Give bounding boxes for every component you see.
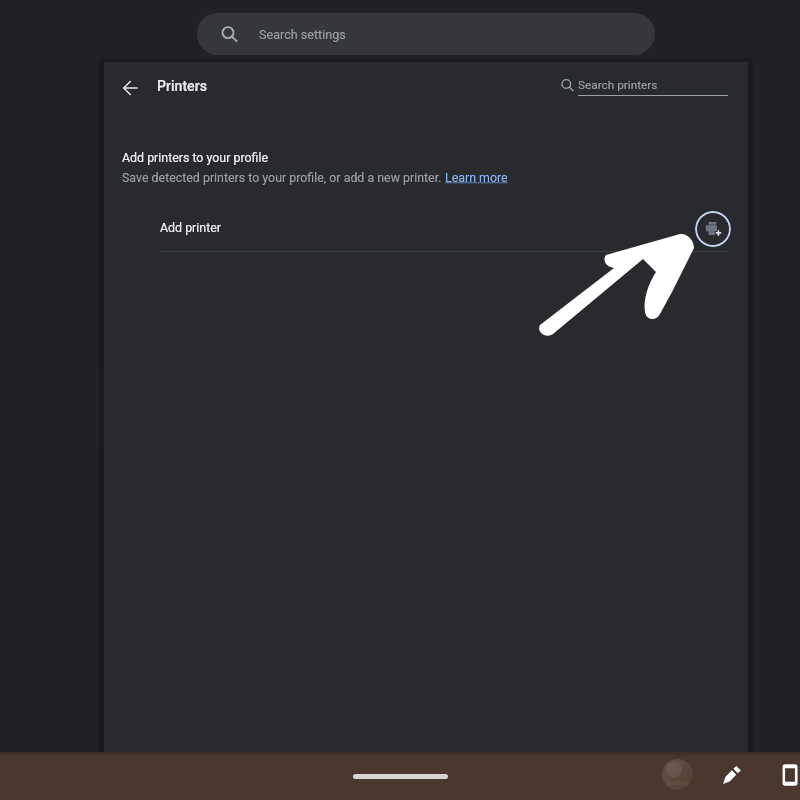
button[interactable]: Phone hub [774,759,800,791]
button[interactable]: Search printers [556,71,736,99]
staticText: Search printers [578,78,658,92]
staticText: Add printers to your profile [122,150,269,165]
button[interactable]: Search settings [197,13,655,55]
button[interactable]: Back [112,70,148,106]
staticText: Search settings [259,27,346,42]
button[interactable]: Add printer [695,211,731,247]
staticText: Save detected printers to your profile, … [122,170,445,185]
button[interactable]: Profile [662,759,693,790]
staticText: Add printer [160,220,221,235]
button[interactable]: Add printer [160,210,732,246]
button[interactable]: Learn more [445,170,508,185]
button[interactable]: Stylus tools [716,759,748,791]
staticText: Printers [157,78,207,95]
